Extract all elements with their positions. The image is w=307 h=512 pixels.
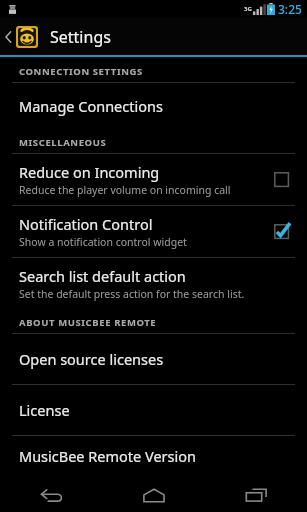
- staticText: Reduce on Incoming: [19, 162, 160, 182]
- button[interactable]: MusicBee Remote Version: [0, 436, 307, 476]
- button[interactable]: Navigate up: [0, 18, 40, 55]
- button[interactable]: Home: [103, 478, 205, 512]
- staticText: Set the default press action for the sea…: [19, 287, 245, 301]
- button[interactable]: Manage Connections: [0, 83, 307, 128]
- button[interactable]: Recent apps: [205, 478, 307, 512]
- button[interactable]: Checked: [271, 221, 293, 243]
- button[interactable]: Back: [0, 478, 103, 512]
- staticText: Open source licenses: [19, 349, 164, 369]
- staticText: MusicBee Remote Version: [19, 446, 197, 466]
- staticText: ABOUT MUSICBEE REMOTE: [19, 316, 157, 329]
- staticText: 3G: [244, 5, 252, 13]
- staticText: 3:25: [278, 1, 302, 17]
- button[interactable]: Notification Control: [0, 206, 307, 257]
- button[interactable]: Reduce on Incoming: [0, 154, 307, 205]
- button[interactable]: Open source licenses: [0, 334, 307, 384]
- staticText: Show a notification control widget: [19, 235, 187, 249]
- button[interactable]: Search list default action: [0, 258, 307, 308]
- staticText: CONNECTION SETTINGS: [19, 65, 143, 78]
- staticText: Reduce the player volume on incoming cal…: [19, 183, 231, 197]
- staticText: Settings: [50, 26, 111, 48]
- staticText: Search list default action: [19, 266, 186, 286]
- staticText: MISCELLANEOUS: [19, 136, 107, 149]
- staticText: Notification Control: [19, 214, 153, 234]
- button[interactable]: License: [0, 385, 307, 435]
- button[interactable]: Unchecked: [271, 169, 293, 191]
- staticText: Manage Connections: [19, 96, 163, 116]
- staticText: License: [19, 400, 70, 420]
